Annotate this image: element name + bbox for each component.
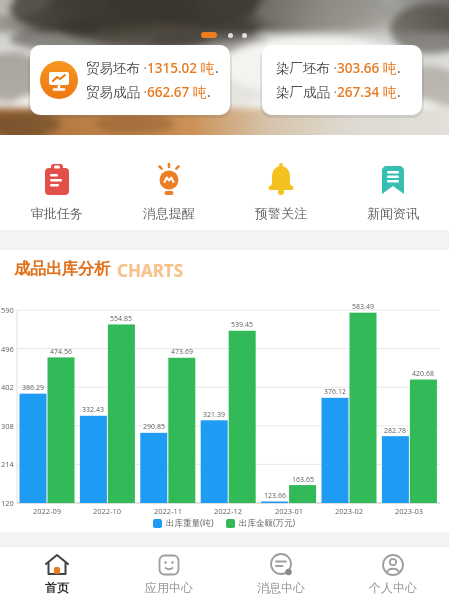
staticText: 386.29 [22,383,44,393]
staticText: CHARTS [117,259,184,282]
staticText: 染厂坯布 [276,60,330,77]
staticText: 321.39 [203,410,225,420]
staticText: . [215,59,219,77]
staticText: · [140,59,147,77]
staticText: 590 [1,305,14,315]
staticText: 消息中心 [257,580,305,595]
staticText: 2022-12 [214,506,243,516]
staticText: 554.85 [110,314,132,324]
staticText: 2023-01 [275,506,304,516]
button[interactable]: 个人中心 [337,547,449,600]
staticText: 282.78 [384,426,406,436]
staticText: 402 [1,382,14,392]
staticText: 染厂成品 [276,84,330,101]
staticText: 贸易成品 [86,84,140,101]
staticText: 308 [1,421,14,431]
staticText: 消息提醒 [143,205,195,221]
button[interactable]: 应用中心 [113,547,225,600]
staticText: · [140,83,147,101]
staticText: 662.67 吨 [147,83,207,101]
staticText: 290.85 [143,422,165,432]
staticText: 出库金额(万元) [239,517,296,529]
staticText: 2023-02 [335,506,364,516]
staticText: 2023-03 [395,506,424,516]
staticText: 2022-11 [154,506,183,516]
button[interactable]: 审批任务 [0,135,113,230]
staticText: 474.56 [50,347,72,357]
staticText: 163.65 [292,475,314,485]
staticText: 120 [1,498,14,508]
button[interactable]: 消息中心 [225,547,337,600]
staticText: 贸易坯布 [86,60,140,77]
staticText: 303.66 吨 [337,59,397,77]
staticText: 出库重量(吨) [166,517,214,529]
staticText: · [330,59,337,77]
staticText: 新闻资讯 [367,205,419,221]
staticText: 首页 [45,580,69,595]
staticText: 496 [1,344,14,354]
button[interactable]: 染厂坯布 [262,45,422,115]
staticText: 473.69 [171,347,193,357]
staticText: 583.49 [352,302,374,312]
button[interactable]: 预警关注 [225,135,337,230]
staticText: 267.34 吨 [337,83,397,101]
staticText: 2022-09 [33,506,62,516]
button[interactable]: 贸易坯布 [30,45,230,115]
staticText: 420.68 [412,369,434,379]
staticText: 123.66 [264,491,286,501]
staticText: 376.12 [324,387,346,397]
staticText: . [397,83,401,101]
staticText: 应用中心 [145,580,193,595]
button[interactable]: 消息提醒 [113,135,225,230]
staticText: 1315.02 吨 [147,59,215,77]
staticText: 个人中心 [369,580,417,595]
button[interactable]: 新闻资讯 [337,135,449,230]
staticText: 成品出库分析 [14,259,110,279]
staticText: 214 [1,459,14,469]
staticText: 332.43 [82,405,104,415]
staticText: . [207,83,211,101]
staticText: 539.45 [231,320,253,330]
staticText: 2022-10 [93,506,122,516]
staticText: 预警关注 [255,205,307,221]
button[interactable]: 首页 [0,547,113,600]
staticText: . [397,59,401,77]
staticText: · [330,83,337,101]
staticText: 审批任务 [31,205,83,221]
